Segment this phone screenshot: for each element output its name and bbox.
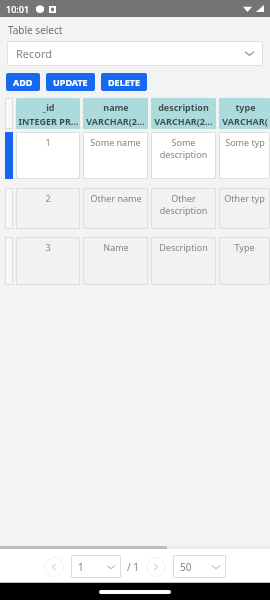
- staticText: INTEGER PR…: [18, 115, 79, 127]
- staticText: 3: [45, 241, 51, 253]
- staticText: Description: [159, 241, 208, 253]
- button[interactable]: Record: [7, 41, 263, 66]
- staticText: / 1: [127, 560, 140, 574]
- button[interactable]: description: [151, 98, 216, 129]
- button[interactable]: Other name: [83, 188, 148, 229]
- button[interactable]: Other description: [151, 188, 216, 229]
- button[interactable]: UPDATE: [46, 73, 95, 91]
- staticText: Other name: [90, 192, 142, 204]
- staticText: 1: [45, 136, 51, 148]
- button[interactable]: _id: [16, 98, 80, 129]
- staticText: Name: [103, 241, 129, 253]
- button[interactable]: Name: [83, 237, 148, 285]
- staticText: 2: [45, 192, 51, 204]
- staticText: Other description: [154, 192, 213, 216]
- staticText: DELETE: [108, 76, 140, 88]
- staticText: Other typ: [224, 192, 265, 204]
- button[interactable]: Other typ: [219, 188, 270, 229]
- button[interactable]: Type: [219, 237, 270, 285]
- button[interactable]: Some name: [83, 132, 148, 179]
- staticText: Some typ: [225, 136, 265, 148]
- staticText: Type: [234, 241, 255, 253]
- button[interactable]: name: [83, 98, 148, 129]
- staticText: description: [158, 101, 209, 113]
- staticText: Some description: [154, 136, 213, 160]
- staticText: UPDATE: [53, 76, 88, 88]
- staticText: 10:01: [6, 3, 30, 15]
- button[interactable]: [5, 188, 13, 229]
- staticText: name: [103, 101, 129, 113]
- button[interactable]: 3: [16, 237, 80, 285]
- staticText: VARCHAR(: [222, 115, 268, 127]
- button[interactable]: Some typ: [219, 132, 270, 179]
- button[interactable]: ADD: [6, 73, 40, 91]
- button[interactable]: Description: [151, 237, 216, 285]
- button[interactable]: 2: [16, 188, 80, 229]
- button[interactable]: Next page: [146, 557, 166, 577]
- staticText: Table select: [8, 23, 63, 37]
- staticText: ADD: [13, 76, 33, 88]
- button[interactable]: type: [219, 98, 270, 129]
- staticText: 50: [180, 560, 192, 574]
- staticText: 1: [78, 560, 84, 574]
- staticText: Some name: [90, 136, 141, 148]
- staticText: _id: [42, 101, 55, 113]
- button[interactable]: Previous page: [44, 557, 64, 577]
- button[interactable]: 50: [173, 555, 226, 578]
- button[interactable]: 1: [71, 555, 121, 578]
- staticText: VARCHAR(2…: [154, 115, 213, 127]
- staticText: Record: [16, 46, 53, 61]
- staticText: VARCHAR(2…: [86, 115, 145, 127]
- button[interactable]: Some description: [151, 132, 216, 179]
- staticText: type: [235, 101, 256, 113]
- button[interactable]: 1: [16, 132, 80, 179]
- button[interactable]: [5, 237, 13, 285]
- button[interactable]: DELETE: [101, 73, 147, 91]
